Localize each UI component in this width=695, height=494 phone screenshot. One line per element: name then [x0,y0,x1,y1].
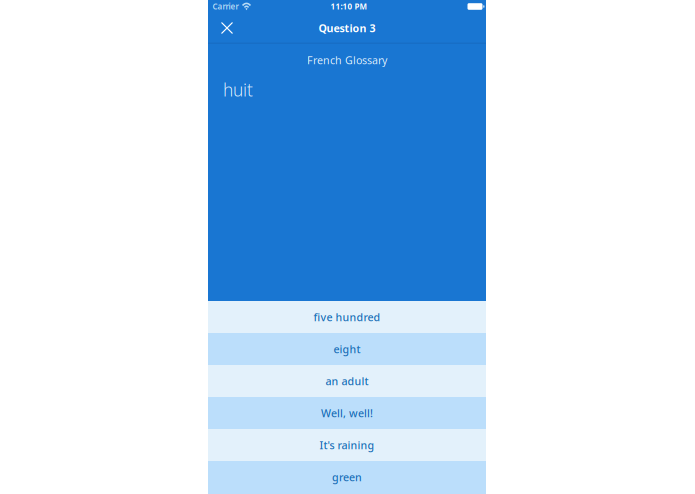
button[interactable]: green [208,461,486,494]
button[interactable]: It's raining [208,429,486,461]
button[interactable]: eight [208,333,486,365]
staticText: Well, well! [321,406,373,420]
staticText: Carrier [212,1,238,12]
staticText: It's raining [319,438,374,452]
staticText: eight [333,342,360,356]
staticText: five hundred [313,310,380,324]
staticText: huit [223,78,253,101]
button[interactable]: five hundred [208,301,486,333]
staticText: 11:10 PM [330,1,367,12]
button[interactable]: Close [208,16,242,44]
staticText: French Glossary [307,53,387,67]
staticText: an adult [325,374,368,388]
button[interactable]: Well, well! [208,397,486,429]
staticText: Question 3 [318,21,375,35]
button[interactable]: an adult [208,365,486,397]
staticText: green [332,470,362,484]
